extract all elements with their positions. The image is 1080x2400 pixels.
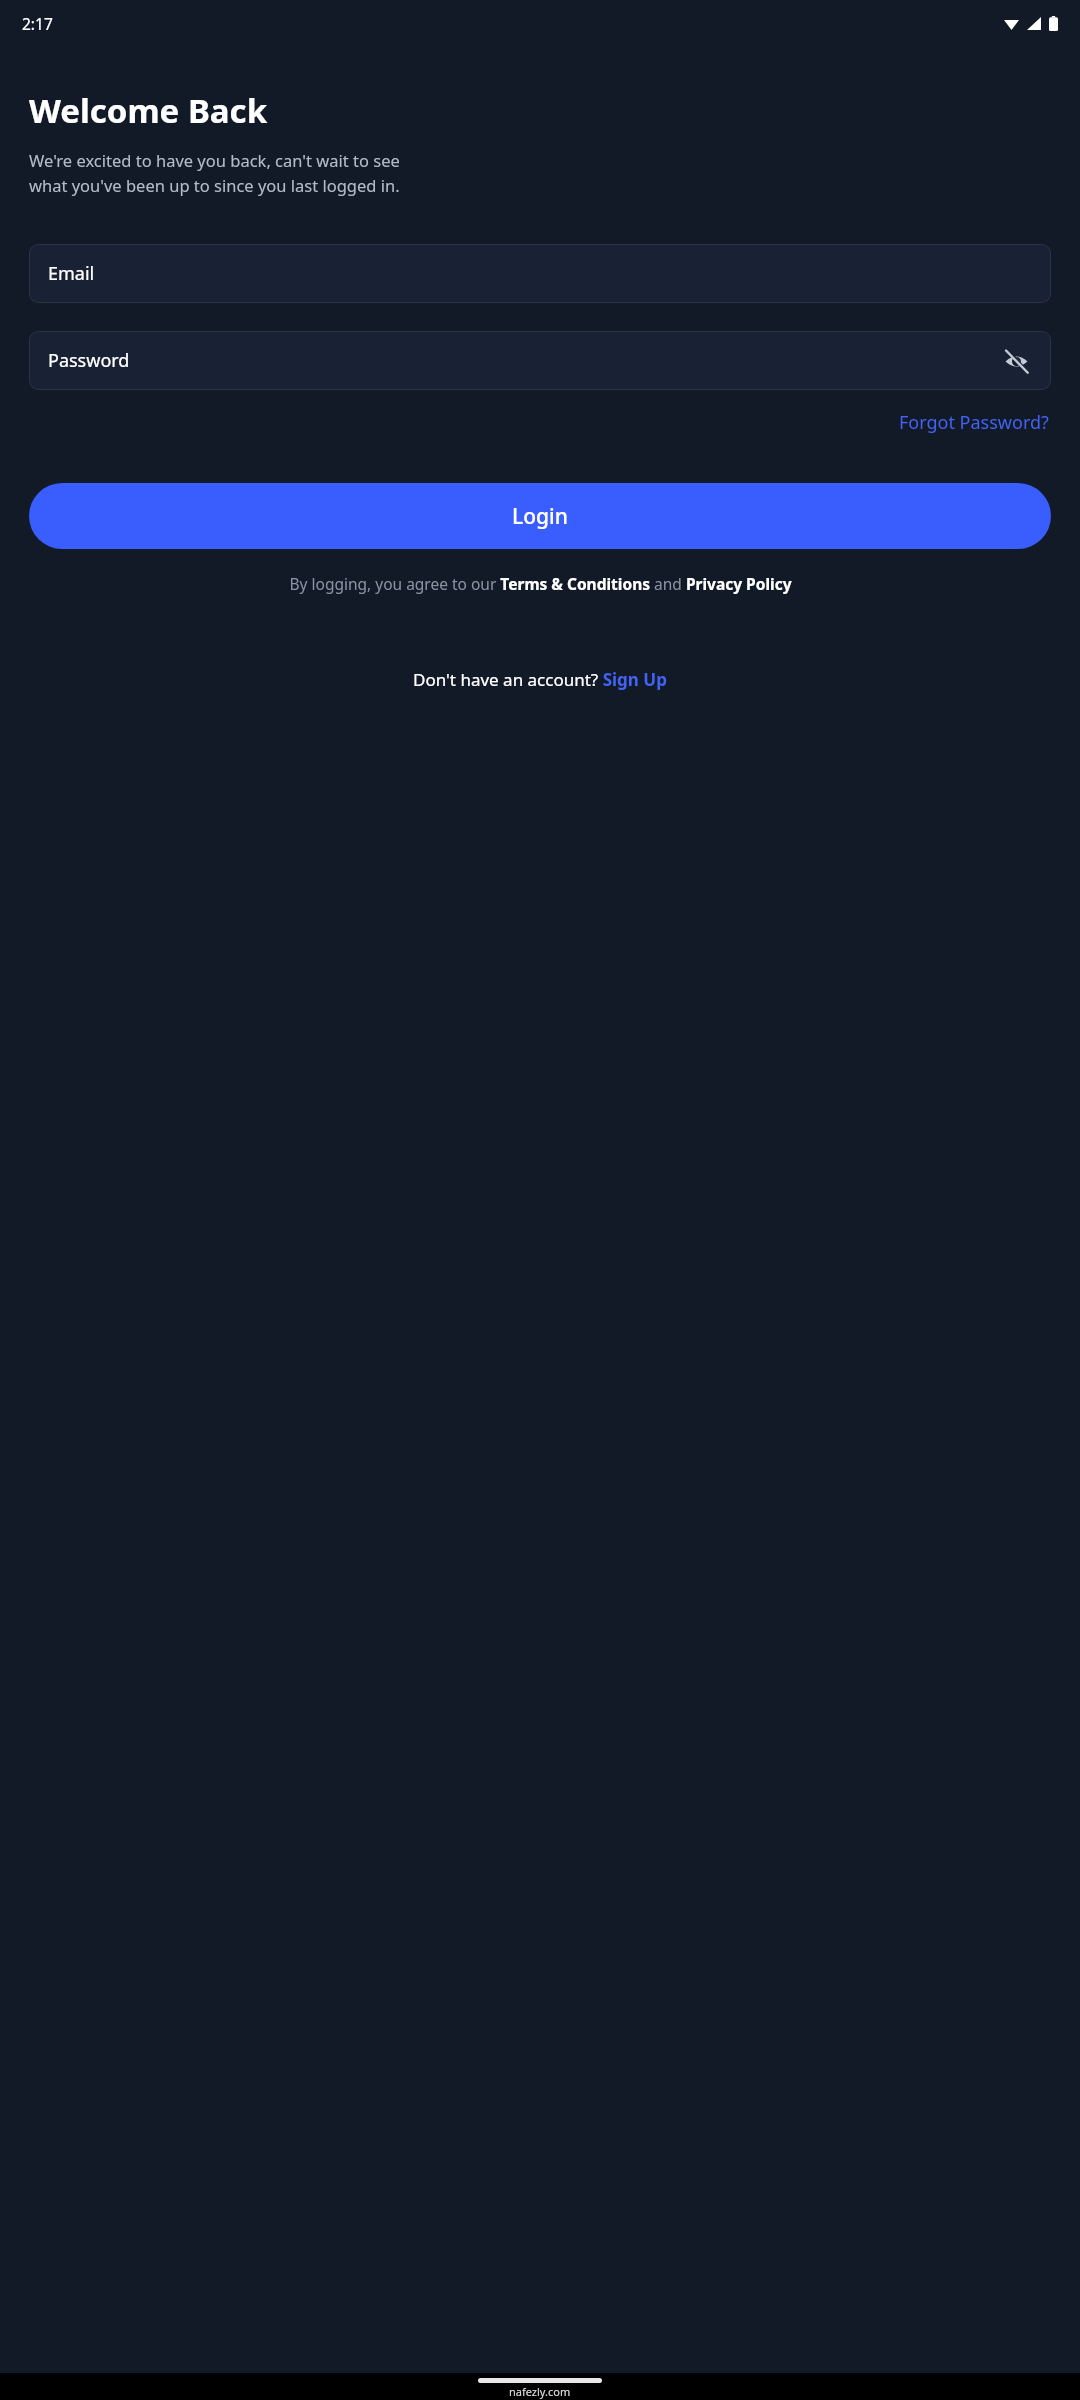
button[interactable]: Show password: [995, 340, 1037, 382]
staticText: 2:17: [22, 13, 53, 34]
staticText: Don't have an account? Sign Up: [413, 668, 667, 691]
button[interactable]: Don't have an account? Sign Up: [409, 664, 671, 695]
staticText: We're excited to have you back, can't wa…: [29, 149, 400, 197]
staticText: Password: [48, 348, 130, 373]
button[interactable]: Forgot Password?: [897, 406, 1051, 439]
staticText: Login: [512, 502, 568, 531]
staticText: nafezly.com: [509, 2384, 571, 2399]
button[interactable]: Password: [29, 331, 1051, 390]
staticText: Email: [48, 261, 95, 286]
button[interactable]: Email: [29, 244, 1051, 303]
staticText: Welcome Back: [29, 88, 268, 133]
staticText: Forgot Password?: [899, 410, 1049, 435]
staticText: By logging, you agree to our Terms & Con…: [289, 573, 792, 594]
button[interactable]: Login: [29, 483, 1051, 549]
button[interactable]: By logging, you agree to our Terms & Con…: [30, 573, 1050, 594]
